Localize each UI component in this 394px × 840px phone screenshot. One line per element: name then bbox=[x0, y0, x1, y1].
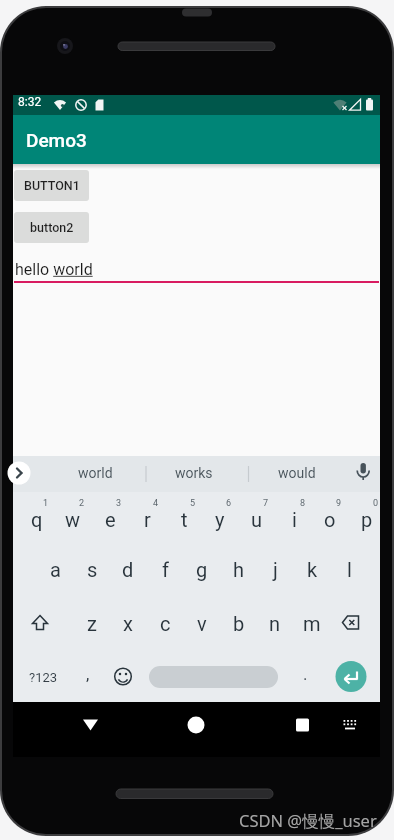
staticText: 4 bbox=[153, 498, 159, 509]
button[interactable]: , bbox=[75, 654, 101, 694]
button[interactable]: w bbox=[56, 498, 90, 540]
staticText: 8:32 bbox=[18, 95, 42, 109]
staticText: t bbox=[181, 508, 188, 531]
staticText: u bbox=[251, 508, 263, 531]
button[interactable]: g bbox=[185, 547, 219, 591]
staticText: e bbox=[105, 508, 116, 531]
button[interactable]: q bbox=[20, 498, 54, 540]
staticText: CSDN @慢慢_user bbox=[239, 809, 377, 832]
button[interactable]: e bbox=[93, 498, 127, 540]
staticText: 8 bbox=[300, 498, 306, 509]
button[interactable]: m bbox=[295, 601, 329, 645]
button[interactable] bbox=[149, 666, 278, 688]
staticText: z bbox=[87, 612, 97, 635]
staticText: b bbox=[233, 612, 245, 635]
button[interactable]: v bbox=[185, 601, 219, 645]
staticText: s bbox=[87, 558, 98, 581]
staticText: hello world bbox=[15, 260, 93, 279]
staticText: BUTTON1 bbox=[24, 178, 80, 193]
staticText: m bbox=[303, 612, 321, 635]
staticText: 2 bbox=[79, 498, 85, 509]
staticText: a bbox=[50, 558, 61, 581]
button[interactable]: t bbox=[167, 498, 201, 540]
staticText: n bbox=[269, 612, 281, 635]
button[interactable]: u bbox=[240, 498, 274, 540]
staticText: ?123 bbox=[29, 670, 58, 685]
staticText: 0 bbox=[373, 498, 379, 509]
button[interactable] bbox=[282, 705, 322, 745]
button[interactable]: y bbox=[203, 498, 237, 540]
staticText: , bbox=[86, 664, 90, 684]
staticText: 1 bbox=[43, 498, 49, 509]
button[interactable]: o bbox=[313, 498, 347, 540]
button[interactable]: ?123 bbox=[17, 655, 69, 699]
button[interactable]: c bbox=[148, 601, 182, 645]
staticText: q bbox=[31, 508, 43, 531]
button[interactable]: f bbox=[148, 547, 182, 591]
staticText: Demo3 bbox=[26, 129, 87, 151]
staticText: f bbox=[162, 558, 169, 581]
button[interactable]: z bbox=[75, 601, 109, 645]
staticText: . bbox=[303, 664, 308, 684]
button[interactable]: b bbox=[222, 601, 256, 645]
staticText: 6 bbox=[226, 498, 232, 509]
staticText: 3 bbox=[116, 498, 122, 509]
button[interactable]: works bbox=[154, 460, 234, 486]
staticText: p bbox=[361, 508, 373, 531]
button[interactable]: BUTTON1 bbox=[14, 170, 89, 201]
button[interactable] bbox=[176, 705, 216, 745]
button[interactable]: j bbox=[258, 547, 292, 591]
button[interactable]: i bbox=[277, 498, 311, 540]
button[interactable]: button2 bbox=[14, 212, 89, 243]
button[interactable]: would bbox=[257, 460, 337, 486]
staticText: i bbox=[292, 508, 297, 531]
staticText: 5 bbox=[190, 498, 196, 509]
staticText: y bbox=[215, 508, 225, 531]
staticText: would bbox=[278, 465, 316, 481]
button[interactable]: l bbox=[332, 547, 366, 591]
staticText: h bbox=[233, 558, 245, 581]
button[interactable]: r bbox=[130, 498, 164, 540]
staticText: works bbox=[175, 465, 213, 481]
staticText: l bbox=[347, 558, 352, 581]
staticText: g bbox=[196, 558, 208, 581]
staticText: d bbox=[122, 558, 134, 581]
staticText: r bbox=[144, 508, 151, 531]
button[interactable] bbox=[70, 705, 110, 745]
staticText: button2 bbox=[30, 220, 74, 235]
button[interactable]: s bbox=[75, 547, 109, 591]
button[interactable]: world bbox=[55, 460, 135, 486]
button[interactable]: n bbox=[258, 601, 292, 645]
button[interactable]: hello world bbox=[15, 254, 382, 284]
staticText: 7 bbox=[263, 498, 269, 509]
button[interactable]: p bbox=[350, 498, 384, 540]
button[interactable] bbox=[333, 705, 367, 745]
staticText: j bbox=[273, 558, 278, 581]
button[interactable]: . bbox=[292, 654, 318, 694]
staticText: c bbox=[160, 612, 171, 635]
staticText: k bbox=[307, 558, 318, 581]
button[interactable]: x bbox=[111, 601, 145, 645]
button[interactable]: d bbox=[111, 547, 145, 591]
staticText: 9 bbox=[336, 498, 342, 509]
staticText: world bbox=[78, 465, 113, 481]
staticText: x bbox=[123, 612, 133, 635]
staticText: w bbox=[65, 508, 81, 531]
button[interactable]: k bbox=[295, 547, 329, 591]
staticText: o bbox=[324, 508, 336, 531]
button[interactable]: h bbox=[222, 547, 256, 591]
staticText: v bbox=[197, 612, 207, 635]
button[interactable]: a bbox=[38, 547, 72, 591]
